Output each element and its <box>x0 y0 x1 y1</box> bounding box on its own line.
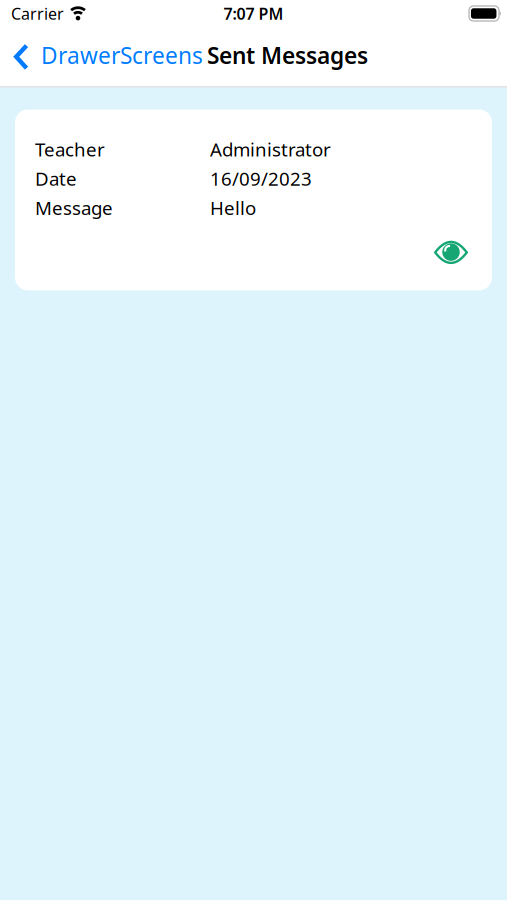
staticText: DrawerScreens <box>41 40 203 70</box>
staticText: Teacher <box>35 137 105 162</box>
button[interactable]: View message <box>434 239 468 265</box>
staticText: Carrier <box>11 3 64 24</box>
staticText: Date <box>35 166 77 191</box>
staticText: Administrator <box>210 137 331 162</box>
staticText: Message <box>35 195 113 220</box>
button[interactable]: Back <box>0 42 203 72</box>
staticText: Sent Messages <box>207 40 368 70</box>
staticText: 7:07 PM <box>223 3 283 24</box>
staticText: 16/09/2023 <box>210 166 312 191</box>
staticText: Hello <box>210 195 256 220</box>
